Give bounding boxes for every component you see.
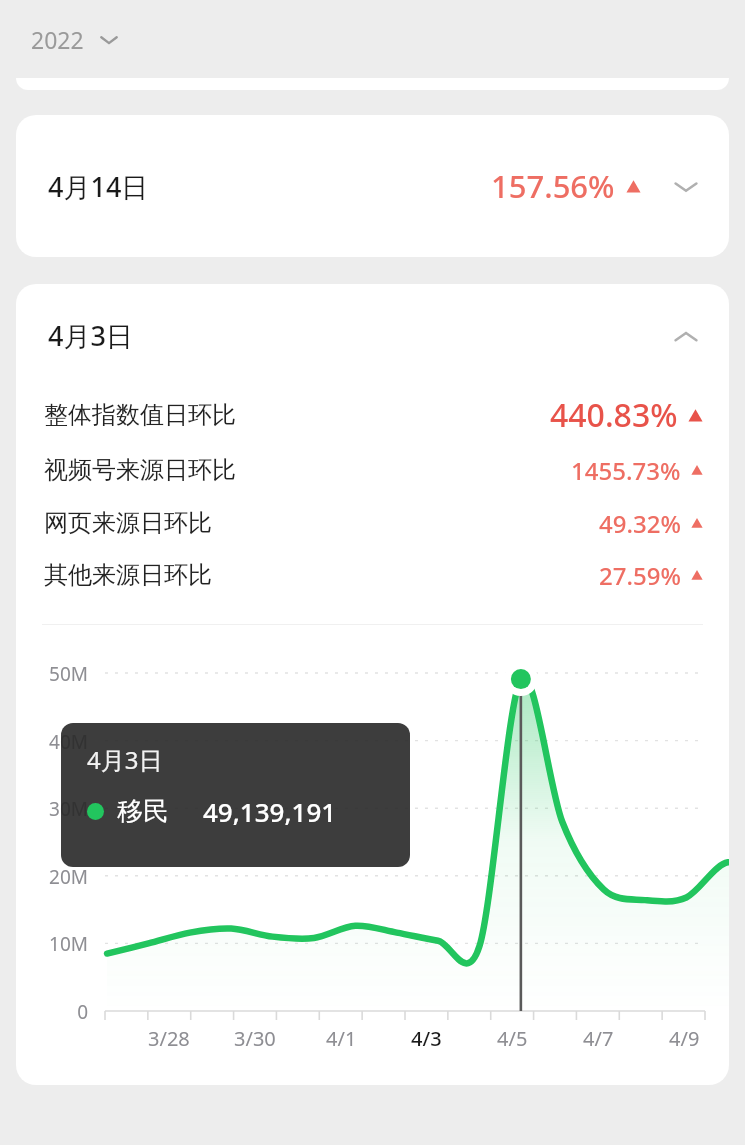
staticText: 3/28 bbox=[148, 1025, 190, 1052]
staticText: 整体指数值日环比 bbox=[44, 400, 236, 430]
button[interactable]: 4月14日 bbox=[16, 115, 729, 257]
staticText: 2022 bbox=[31, 24, 84, 55]
staticText: 4/1 bbox=[326, 1025, 357, 1052]
button[interactable]: 2022 bbox=[29, 20, 122, 59]
staticText: 440.83% bbox=[550, 393, 678, 437]
staticText: 30M bbox=[49, 796, 88, 822]
staticText: 4月3日 bbox=[87, 743, 163, 776]
button[interactable]: 网页来源日环比 bbox=[16, 497, 729, 549]
button[interactable]: 视频号来源日环比 bbox=[16, 443, 729, 497]
staticText: 4月3日 bbox=[48, 317, 133, 354]
button[interactable]: 整体指数值日环比 bbox=[16, 387, 729, 443]
staticText: 0 bbox=[77, 999, 88, 1025]
staticText: 网页来源日环比 bbox=[44, 508, 212, 538]
staticText: 20M bbox=[49, 864, 88, 890]
staticText: 157.56% bbox=[491, 165, 615, 207]
staticText: 4/9 bbox=[669, 1025, 700, 1052]
staticText: 4/3 bbox=[411, 1025, 442, 1052]
button[interactable]: Collapse bbox=[669, 319, 703, 353]
staticText: 49.32% bbox=[599, 507, 681, 540]
staticText: 40M bbox=[49, 729, 88, 755]
staticText: 49,139,191 bbox=[203, 794, 337, 829]
button[interactable]: Expand bbox=[669, 169, 703, 203]
staticText: 4/5 bbox=[497, 1025, 528, 1052]
staticText: 移民 bbox=[117, 795, 169, 828]
button[interactable]: 其他来源日环比 bbox=[16, 549, 729, 601]
staticText: 27.59% bbox=[599, 559, 681, 592]
staticText: 4/7 bbox=[583, 1025, 614, 1052]
staticText: 其他来源日环比 bbox=[44, 560, 212, 590]
staticText: 1455.73% bbox=[571, 454, 681, 487]
staticText: 4月14日 bbox=[48, 168, 149, 205]
staticText: 视频号来源日环比 bbox=[44, 455, 236, 485]
staticText: 3/30 bbox=[234, 1025, 276, 1052]
button[interactable]: 4月3日 bbox=[16, 284, 729, 387]
staticText: 10M bbox=[49, 931, 88, 957]
staticText: 50M bbox=[49, 661, 88, 687]
